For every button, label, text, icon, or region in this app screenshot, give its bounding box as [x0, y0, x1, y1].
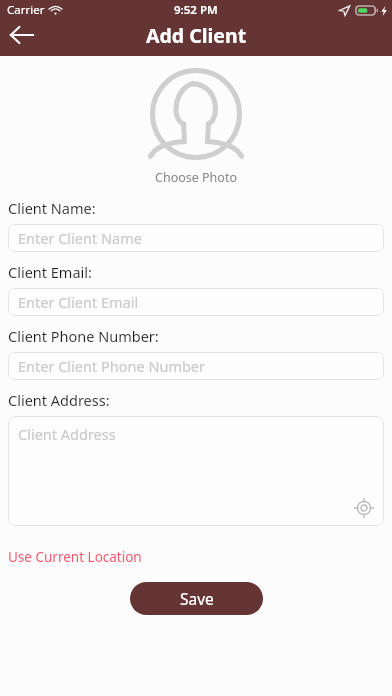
- staticText: Client Name:: [8, 198, 96, 218]
- staticText: Use Current Location: [8, 548, 142, 566]
- staticText: Carrier: [7, 2, 45, 18]
- staticText: Save: [180, 588, 214, 609]
- button[interactable]: Locate on map: [352, 496, 376, 520]
- staticText: Choose Photo: [155, 169, 237, 186]
- staticText: 9:52 PM: [174, 2, 218, 18]
- staticText: Enter Client Phone Number: [18, 356, 206, 376]
- staticText: Client Email:: [8, 262, 92, 282]
- button[interactable]: Enter Client Name: [8, 224, 384, 252]
- staticText: Client Address: [18, 424, 116, 444]
- staticText: Client Phone Number:: [8, 326, 159, 346]
- button[interactable]: Back: [0, 14, 44, 56]
- button[interactable]: Enter Client Email: [8, 288, 384, 316]
- staticText: Add Client: [146, 22, 247, 49]
- staticText: Enter Client Name: [18, 228, 142, 248]
- button[interactable]: Save: [130, 582, 263, 615]
- staticText: Client Address:: [8, 390, 110, 410]
- button[interactable]: Enter Client Phone Number: [8, 352, 384, 380]
- button[interactable]: Use Current Location: [8, 548, 142, 566]
- button[interactable]: Client Address: [8, 416, 384, 526]
- button[interactable]: Choose Photo: [0, 68, 392, 186]
- staticText: Enter Client Email: [18, 292, 139, 312]
